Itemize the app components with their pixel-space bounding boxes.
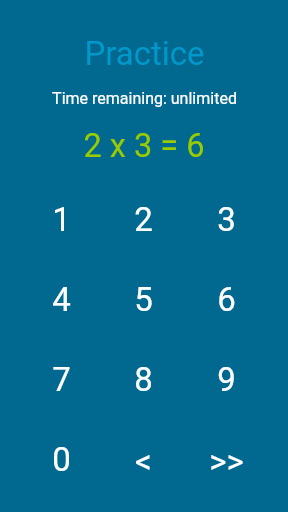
staticText: < (135, 442, 152, 481)
staticText: 7 (52, 360, 71, 399)
staticText: Practice (84, 34, 205, 73)
button[interactable]: 3 (185, 179, 268, 259)
staticText: >> (209, 442, 244, 481)
button[interactable]: 9 (185, 339, 268, 419)
staticText: 5 (134, 280, 153, 319)
button[interactable]: 1 (20, 179, 102, 259)
button[interactable]: 8 (102, 339, 185, 419)
button[interactable]: Backspace (102, 419, 185, 499)
staticText: 8 (134, 360, 153, 399)
staticText: 3 (217, 200, 236, 239)
staticText: 9 (217, 360, 236, 399)
button[interactable]: 4 (20, 259, 102, 339)
button[interactable]: 2 (102, 179, 185, 259)
button[interactable]: 5 (102, 259, 185, 339)
button[interactable]: 0 (20, 419, 102, 499)
staticText: Time remaining: unlimited (52, 89, 237, 108)
staticText: 1 (52, 200, 71, 239)
staticText: 2 (134, 200, 153, 239)
staticText: 6 (217, 280, 236, 319)
staticText: 4 (52, 280, 71, 319)
staticText: 2 x 3 = 6 (83, 127, 205, 161)
button[interactable]: 7 (20, 339, 102, 419)
button[interactable]: Next question (185, 419, 268, 499)
button[interactable]: 6 (185, 259, 268, 339)
staticText: 0 (52, 440, 71, 479)
